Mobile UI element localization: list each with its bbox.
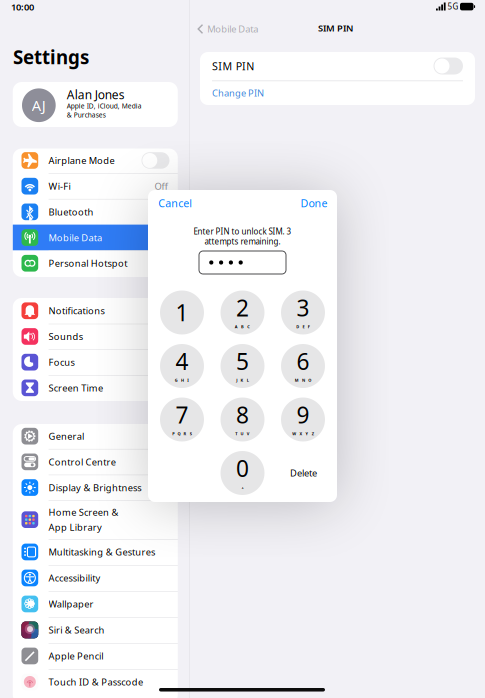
staticText: SIM PIN (318, 22, 353, 34)
staticText: T U V (235, 431, 250, 436)
button[interactable]: 3 (281, 290, 325, 334)
button[interactable]: Personal Hotspot (21, 250, 169, 276)
staticText: Bluetooth (49, 206, 94, 218)
button[interactable]: 4 (160, 344, 204, 388)
staticText: SIM PIN (212, 59, 254, 73)
button[interactable]: Focus (21, 349, 169, 375)
button[interactable]: Change PIN (212, 81, 463, 105)
staticText: Apple ID, iCloud, Media (67, 102, 142, 110)
staticText: 6 (296, 346, 309, 376)
button[interactable]: Multitasking & Gestures (21, 539, 169, 565)
staticText: Mobile Data (207, 23, 258, 35)
staticText: Done (301, 196, 328, 210)
button[interactable]: SIM PIN (212, 52, 463, 80)
button[interactable]: Mobile Data (21, 225, 169, 250)
staticText: 0 (236, 453, 249, 483)
button[interactable]: Cancel (158, 194, 218, 211)
button[interactable]: 7 (160, 397, 204, 441)
staticText: W X Y Z (292, 431, 314, 436)
button[interactable]: 6 (281, 344, 325, 388)
button[interactable]: Apple Pencil (21, 643, 169, 669)
staticText: 9 (296, 399, 309, 430)
staticText: 2 (236, 292, 249, 323)
button[interactable]: Wallpaper (21, 591, 169, 617)
staticText: Control Centre (49, 456, 116, 468)
staticText: Mobile Data (49, 231, 102, 244)
staticText: Wi-Fi (49, 180, 71, 192)
button[interactable]: Sounds (21, 323, 169, 349)
staticText: Wallpaper (49, 598, 94, 610)
staticText: A B C (235, 324, 250, 329)
staticText: & Purchases (67, 111, 106, 119)
staticText: 8 (236, 399, 249, 430)
button[interactable]: Touch ID & Passcode (21, 669, 169, 695)
button[interactable]: Notifications (21, 298, 169, 324)
staticText: Notifications (49, 305, 105, 317)
button[interactable]: AJ (13, 82, 178, 127)
staticText: Off (154, 180, 167, 192)
staticText: Personal Hotspot (49, 257, 127, 269)
button[interactable]: Delete (276, 451, 331, 495)
button[interactable]: Home Screen & (21, 500, 169, 539)
button[interactable]: General (21, 423, 169, 449)
staticText: Screen Time (49, 382, 103, 394)
staticText: 1 (175, 297, 188, 327)
staticText: Airplane Mode (49, 154, 115, 167)
button[interactable]: Display & Brightness (21, 475, 169, 500)
button[interactable]: Bluetooth (21, 199, 169, 225)
button[interactable]: Control Centre (21, 449, 169, 475)
staticText: Change PIN (212, 87, 264, 99)
button[interactable]: Accessibility (21, 565, 169, 591)
staticText: Delete (290, 467, 317, 479)
staticText: P Q R S (172, 431, 192, 436)
staticText: General (49, 430, 84, 442)
button[interactable]: Screen Time (21, 375, 169, 401)
staticText: 10:00 (11, 1, 34, 13)
staticText: + (241, 485, 243, 490)
staticText: 3 (296, 292, 309, 323)
staticText: Settings (13, 45, 89, 69)
button[interactable]: Wi-Fi (21, 173, 169, 199)
staticText: 7 (175, 399, 188, 430)
staticText: Enter PIN to unlock SIM. 3 (193, 226, 291, 237)
staticText: Siri & Search (49, 624, 105, 636)
button[interactable]: 1 (160, 290, 204, 334)
staticText: M N O (295, 378, 311, 383)
staticText: Apple Pencil (49, 650, 103, 662)
button[interactable]: 5 (220, 344, 264, 388)
staticText: 5 (236, 346, 249, 376)
staticText: Cancel (158, 196, 192, 210)
staticText: Alan Jones (67, 87, 125, 102)
button[interactable]: 2 (220, 290, 264, 334)
button[interactable]: 8 (220, 397, 264, 441)
button[interactable]: 0 (220, 451, 264, 495)
button[interactable]: 9 (281, 397, 325, 441)
staticText: Multitasking & Gestures (49, 546, 155, 558)
staticText: J K L (236, 378, 249, 383)
staticText: attempts remaining. (204, 236, 280, 247)
button[interactable]: Mobile Data (197, 21, 287, 37)
staticText: D E F (296, 324, 310, 329)
staticText: Accessibility (49, 572, 101, 584)
button[interactable]: Siri & Search (21, 617, 169, 643)
staticText: Home Screen & (49, 506, 119, 518)
staticText: 4 (175, 346, 188, 376)
staticText: Sounds (49, 330, 83, 343)
staticText: AJ (32, 95, 46, 115)
staticText: 5G (447, 1, 458, 12)
staticText: G H I (175, 378, 189, 383)
staticText: Display & Brightness (49, 481, 141, 494)
staticText: Touch ID & Passcode (49, 676, 143, 688)
button[interactable]: Airplane Mode (21, 147, 169, 173)
button[interactable]: Done (268, 194, 328, 211)
staticText: Focus (49, 356, 75, 368)
staticText: App Library (49, 521, 102, 533)
